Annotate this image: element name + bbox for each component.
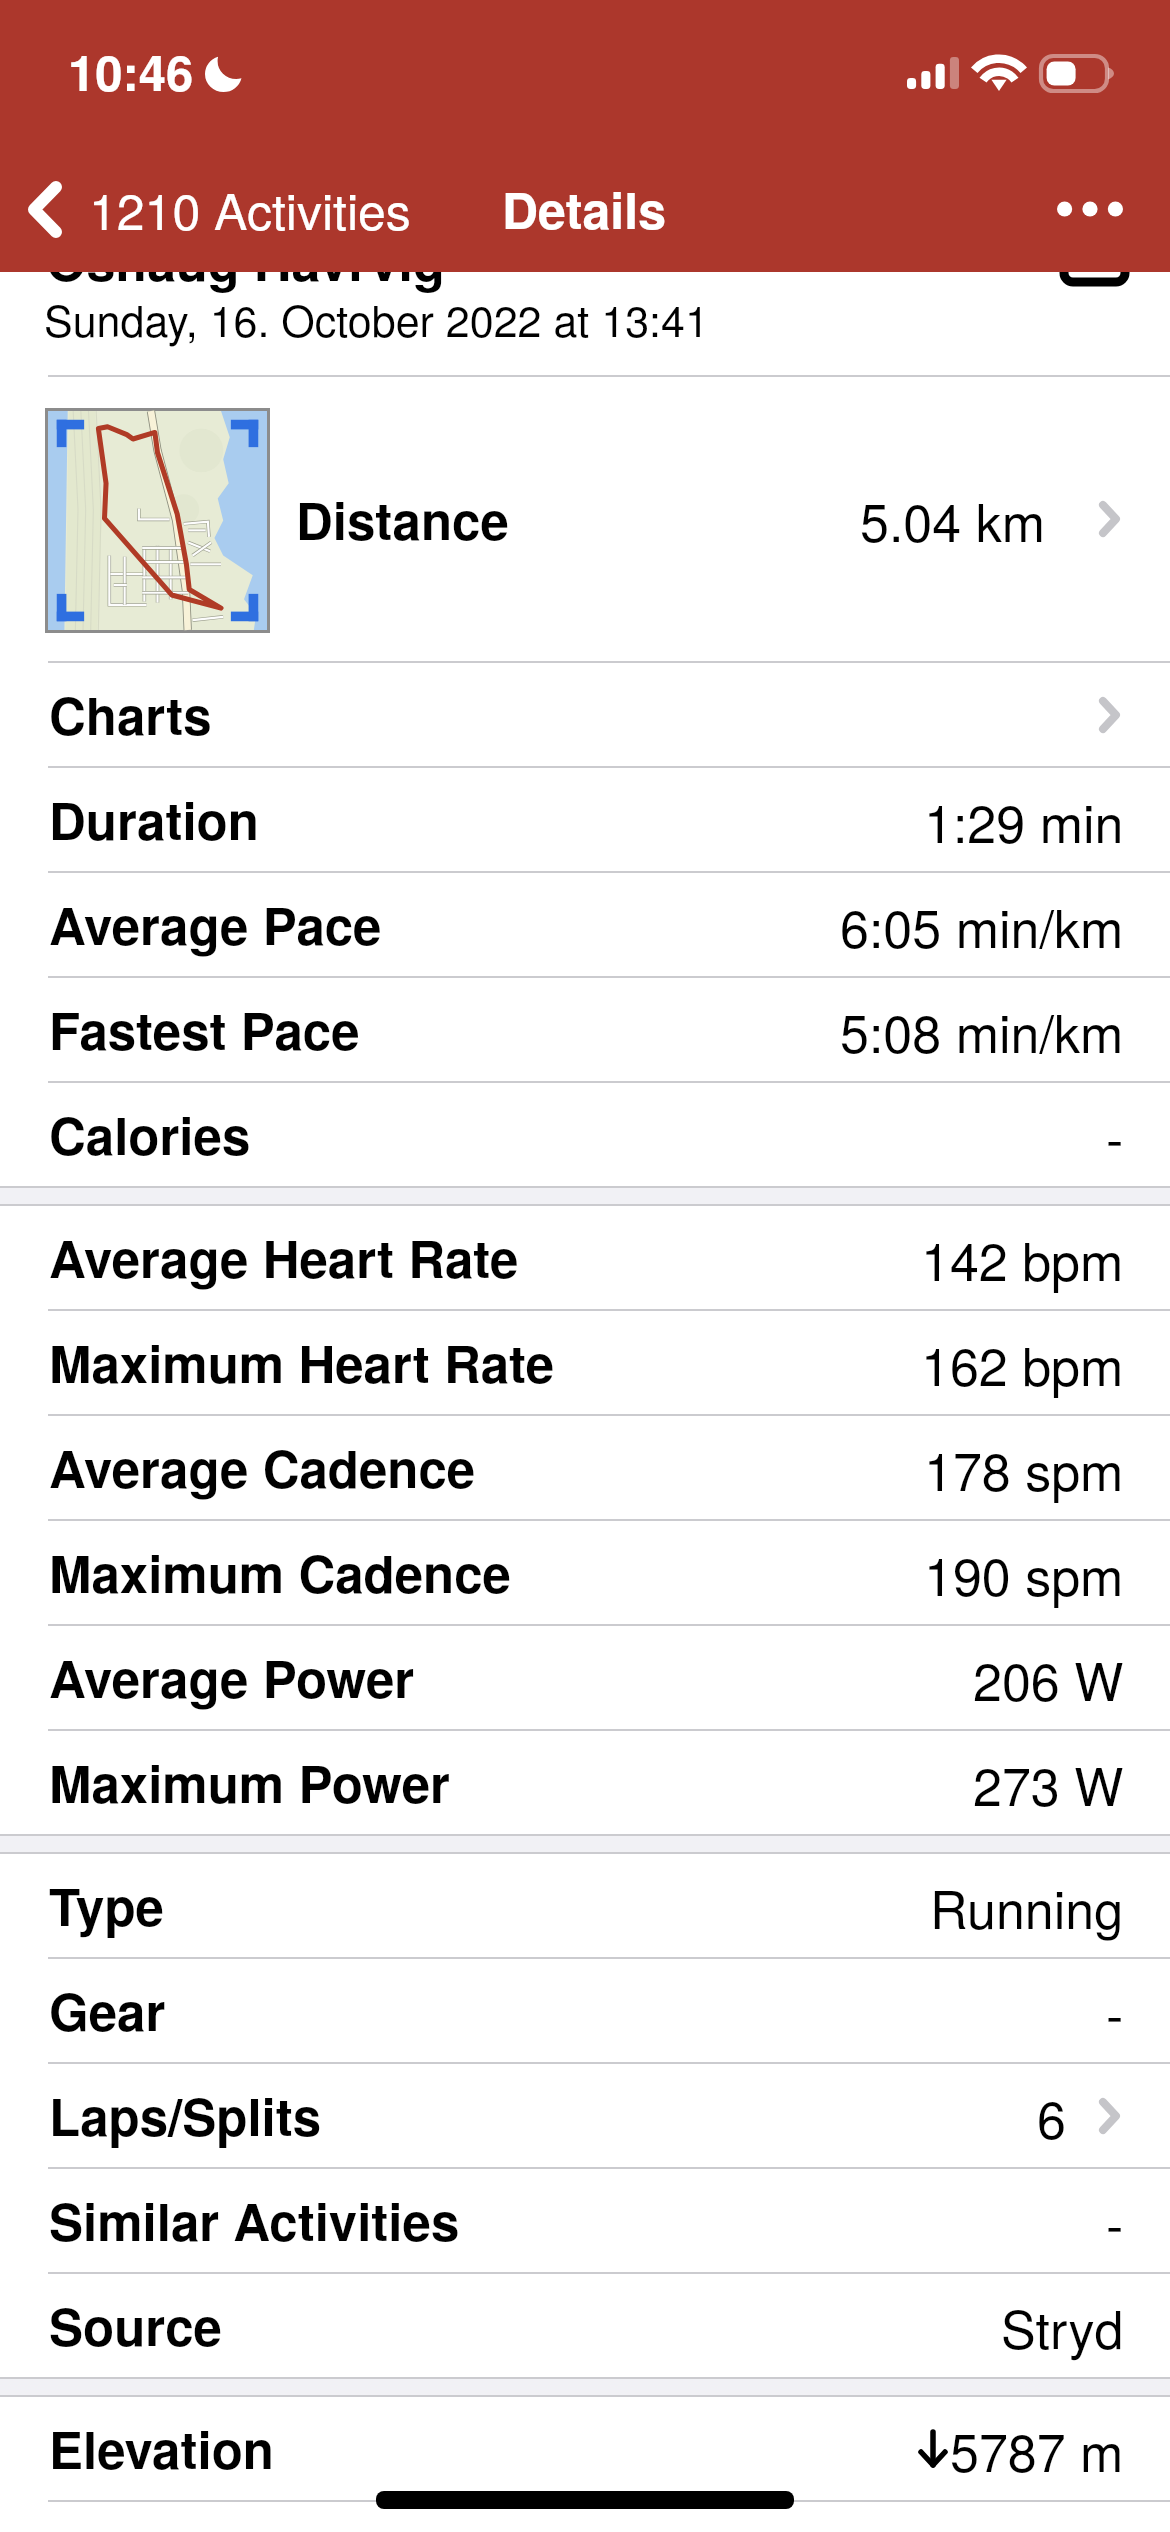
button[interactable]: Source bbox=[0, 2274, 1170, 2377]
button[interactable]: Elevation bbox=[0, 2397, 1170, 2500]
staticText: Similar Activities bbox=[49, 2184, 460, 2257]
staticText: - bbox=[1106, 1098, 1124, 1172]
button[interactable]: Average Power bbox=[0, 1626, 1170, 1729]
staticText: Duration bbox=[49, 783, 259, 856]
button[interactable]: Average Pace bbox=[0, 873, 1170, 976]
button[interactable]: Fastest Pace bbox=[0, 978, 1170, 1081]
button[interactable]: Similar Activities bbox=[0, 2169, 1170, 2272]
staticText: 1210 Activities bbox=[89, 173, 411, 245]
staticText: - bbox=[1106, 1974, 1124, 2048]
staticText: 5:08 min/km bbox=[840, 993, 1124, 1067]
button[interactable]: Distance bbox=[0, 377, 1170, 661]
staticText: Distance bbox=[296, 483, 509, 556]
staticText: Average Pace bbox=[49, 888, 382, 961]
staticText: Charts bbox=[49, 678, 212, 751]
button[interactable]: Maximum Heart Rate bbox=[0, 1311, 1170, 1414]
button[interactable]: Average Cadence bbox=[0, 1416, 1170, 1519]
staticText: Average Power bbox=[49, 1641, 415, 1714]
button[interactable]: Average Heart Rate bbox=[0, 1206, 1170, 1309]
staticText: 162 bpm bbox=[921, 1326, 1124, 1400]
staticText: Average Heart Rate bbox=[49, 1221, 519, 1294]
staticText: Average Cadence bbox=[49, 1431, 476, 1504]
staticText: Maximum Cadence bbox=[49, 1536, 511, 1609]
staticText: Stryd bbox=[1001, 2289, 1124, 2363]
button[interactable]: Gear bbox=[0, 1959, 1170, 2062]
button[interactable]: More options bbox=[1038, 162, 1142, 255]
staticText: 6:05 min/km bbox=[840, 888, 1124, 962]
button[interactable]: Share bbox=[1064, 228, 1125, 282]
button[interactable]: Maximum Cadence bbox=[0, 1521, 1170, 1624]
staticText: 273 W bbox=[973, 1746, 1124, 1820]
button[interactable]: Charts bbox=[0, 663, 1170, 766]
staticText: - bbox=[1106, 2184, 1124, 2258]
staticText: 5787 m bbox=[950, 2412, 1124, 2486]
staticText: 1:29 min bbox=[924, 783, 1124, 857]
button[interactable]: Maximum Power bbox=[0, 1731, 1170, 1834]
staticText: 5.04 km bbox=[860, 482, 1045, 556]
staticText: Source bbox=[49, 2289, 222, 2362]
staticText: 10:46 bbox=[68, 36, 194, 106]
staticText: 6 bbox=[1037, 2079, 1066, 2153]
staticText: Type bbox=[49, 1869, 164, 1942]
staticText: Gear bbox=[49, 1974, 166, 2047]
staticText: 190 spm bbox=[924, 1536, 1124, 1610]
staticText: 206 W bbox=[973, 1641, 1124, 1715]
staticText: Fastest Pace bbox=[49, 993, 360, 1066]
staticText: 178 spm bbox=[924, 1431, 1124, 1505]
staticText: 142 bpm bbox=[921, 1221, 1124, 1295]
staticText: Calories bbox=[49, 1098, 251, 1171]
button[interactable]: Calories bbox=[0, 1083, 1170, 1186]
staticText: Maximum Heart Rate bbox=[49, 1326, 555, 1399]
staticText: Sunday, 16. October 2022 at 13:41 bbox=[44, 288, 709, 350]
button[interactable]: Details bbox=[502, 173, 666, 245]
staticText: Running bbox=[930, 1869, 1124, 1943]
button[interactable]: 1210 Activities bbox=[0, 173, 425, 245]
staticText: Maximum Power bbox=[49, 1746, 450, 1819]
button[interactable]: Laps/Splits bbox=[0, 2064, 1170, 2167]
button[interactable]: Type bbox=[0, 1854, 1170, 1957]
button[interactable]: Duration bbox=[0, 768, 1170, 871]
staticText: Laps/Splits bbox=[49, 2079, 322, 2152]
staticText: Elevation bbox=[49, 2412, 274, 2485]
staticText: Oshaug Havrvig bbox=[46, 222, 445, 296]
